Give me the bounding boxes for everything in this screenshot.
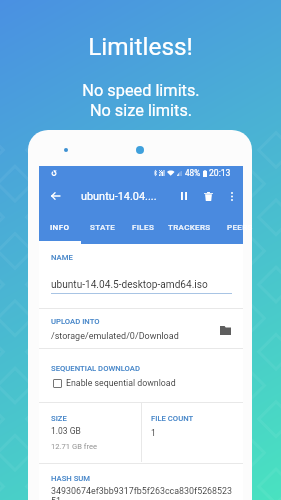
staticText: No speed limits. No size limits. [82, 81, 200, 120]
button[interactable]: INFO [39, 212, 81, 244]
staticText: NAME [51, 253, 73, 262]
button[interactable]: FILES [123, 212, 163, 244]
staticText: ubuntu-14.04.5-desktop-amd64.iso [51, 279, 208, 291]
staticText: SEQUENTIAL DOWNLOAD [51, 364, 140, 373]
button[interactable]: More options [220, 180, 243, 212]
button[interactable]: Pause [171, 180, 197, 212]
staticText: 1 [151, 428, 156, 438]
button[interactable]: TRACKERS [163, 212, 215, 244]
staticText: FILE COUNT [151, 414, 194, 423]
staticText: 12.71 GB free [51, 442, 97, 451]
staticText: 34930674ef3bb9317fb5f263cca830f5268523 [51, 486, 233, 496]
staticText: HASH SUM [51, 474, 91, 483]
staticText: SIZE [51, 414, 67, 423]
staticText: FILES [132, 223, 155, 232]
staticText: STATE [90, 223, 116, 232]
button[interactable]: Back [42, 180, 68, 212]
staticText: UPLOAD INTO [51, 317, 100, 326]
staticText: 20:13 [209, 168, 231, 178]
staticText: 51 [51, 496, 61, 500]
staticText: Enable sequential download [66, 378, 176, 388]
staticText: ubuntu-14.04.... [81, 190, 157, 203]
staticText: INFO [50, 223, 70, 232]
staticText: 1.03 GB [51, 426, 81, 436]
staticText: Limitless! [88, 32, 193, 61]
button[interactable]: PEERS [215, 212, 265, 244]
staticText: 48% [185, 168, 201, 178]
button[interactable]: Delete [197, 180, 220, 212]
staticText: TRACKERS [168, 223, 211, 232]
button[interactable]: Enable sequential download [51, 375, 201, 391]
staticText: PEERS [227, 223, 253, 232]
button[interactable]: STATE [81, 212, 124, 244]
button[interactable]: Choose folder [210, 318, 240, 342]
staticText: /storage/emulated/0/Download [51, 331, 179, 342]
